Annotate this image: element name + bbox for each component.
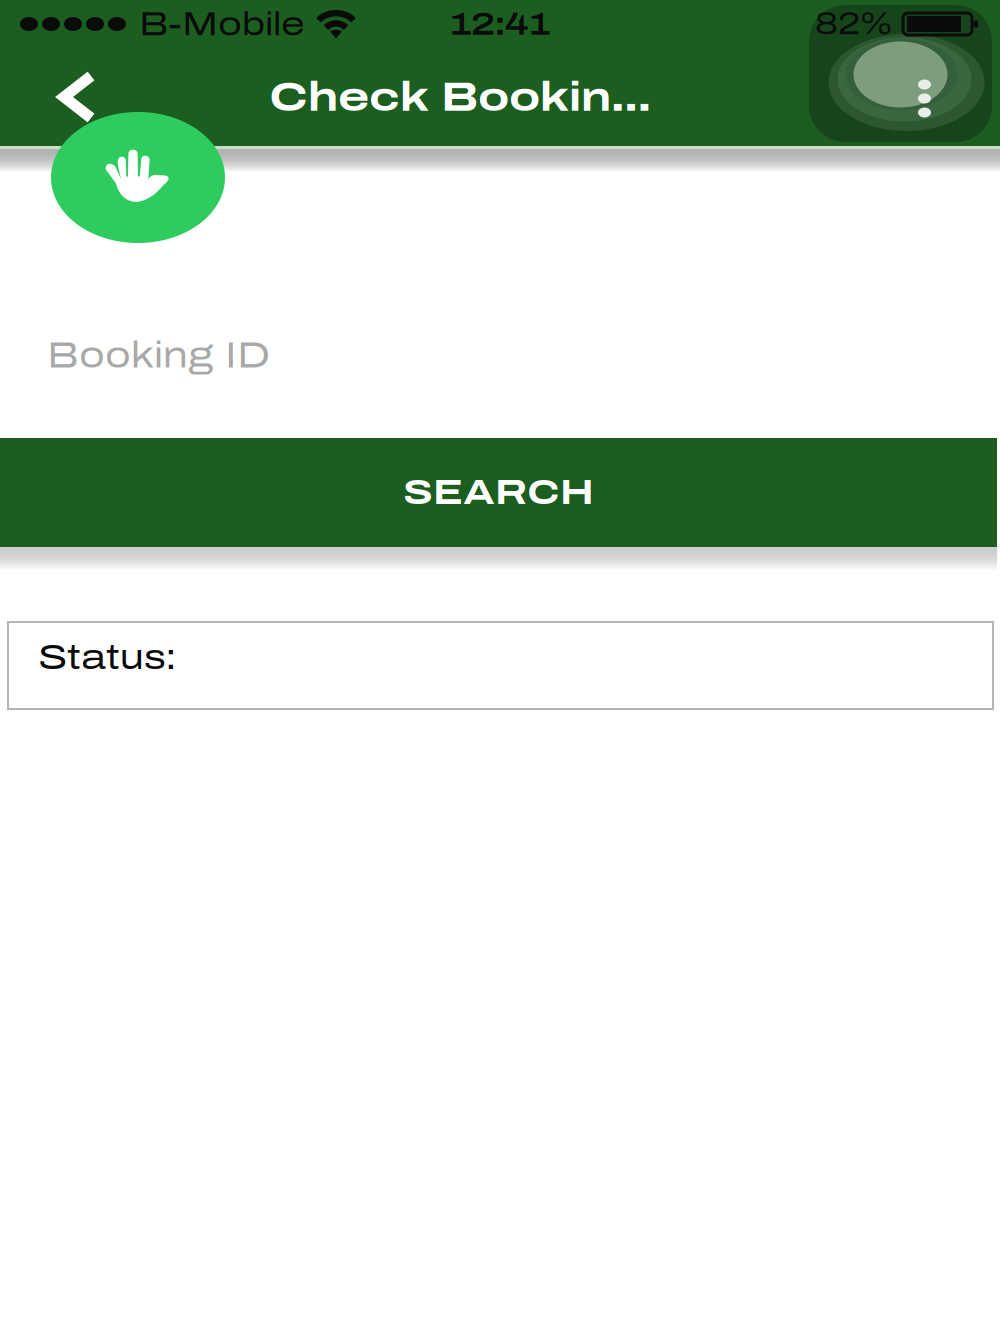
staticText: B-Mobile: [139, 6, 305, 42]
staticText: Status:: [38, 639, 176, 676]
staticText: Check Bookin…: [269, 74, 651, 119]
staticText: 82%: [815, 7, 892, 41]
staticText: SEARCH: [403, 474, 594, 511]
staticText: 12:41: [450, 7, 550, 41]
button[interactable]: Back: [0, 48, 130, 146]
staticText: Booking ID: [47, 336, 271, 375]
button[interactable]: Accessibility menu: [51, 112, 225, 243]
button[interactable]: AssistiveTouch: [809, 5, 992, 142]
button[interactable]: SEARCH: [0, 438, 997, 547]
